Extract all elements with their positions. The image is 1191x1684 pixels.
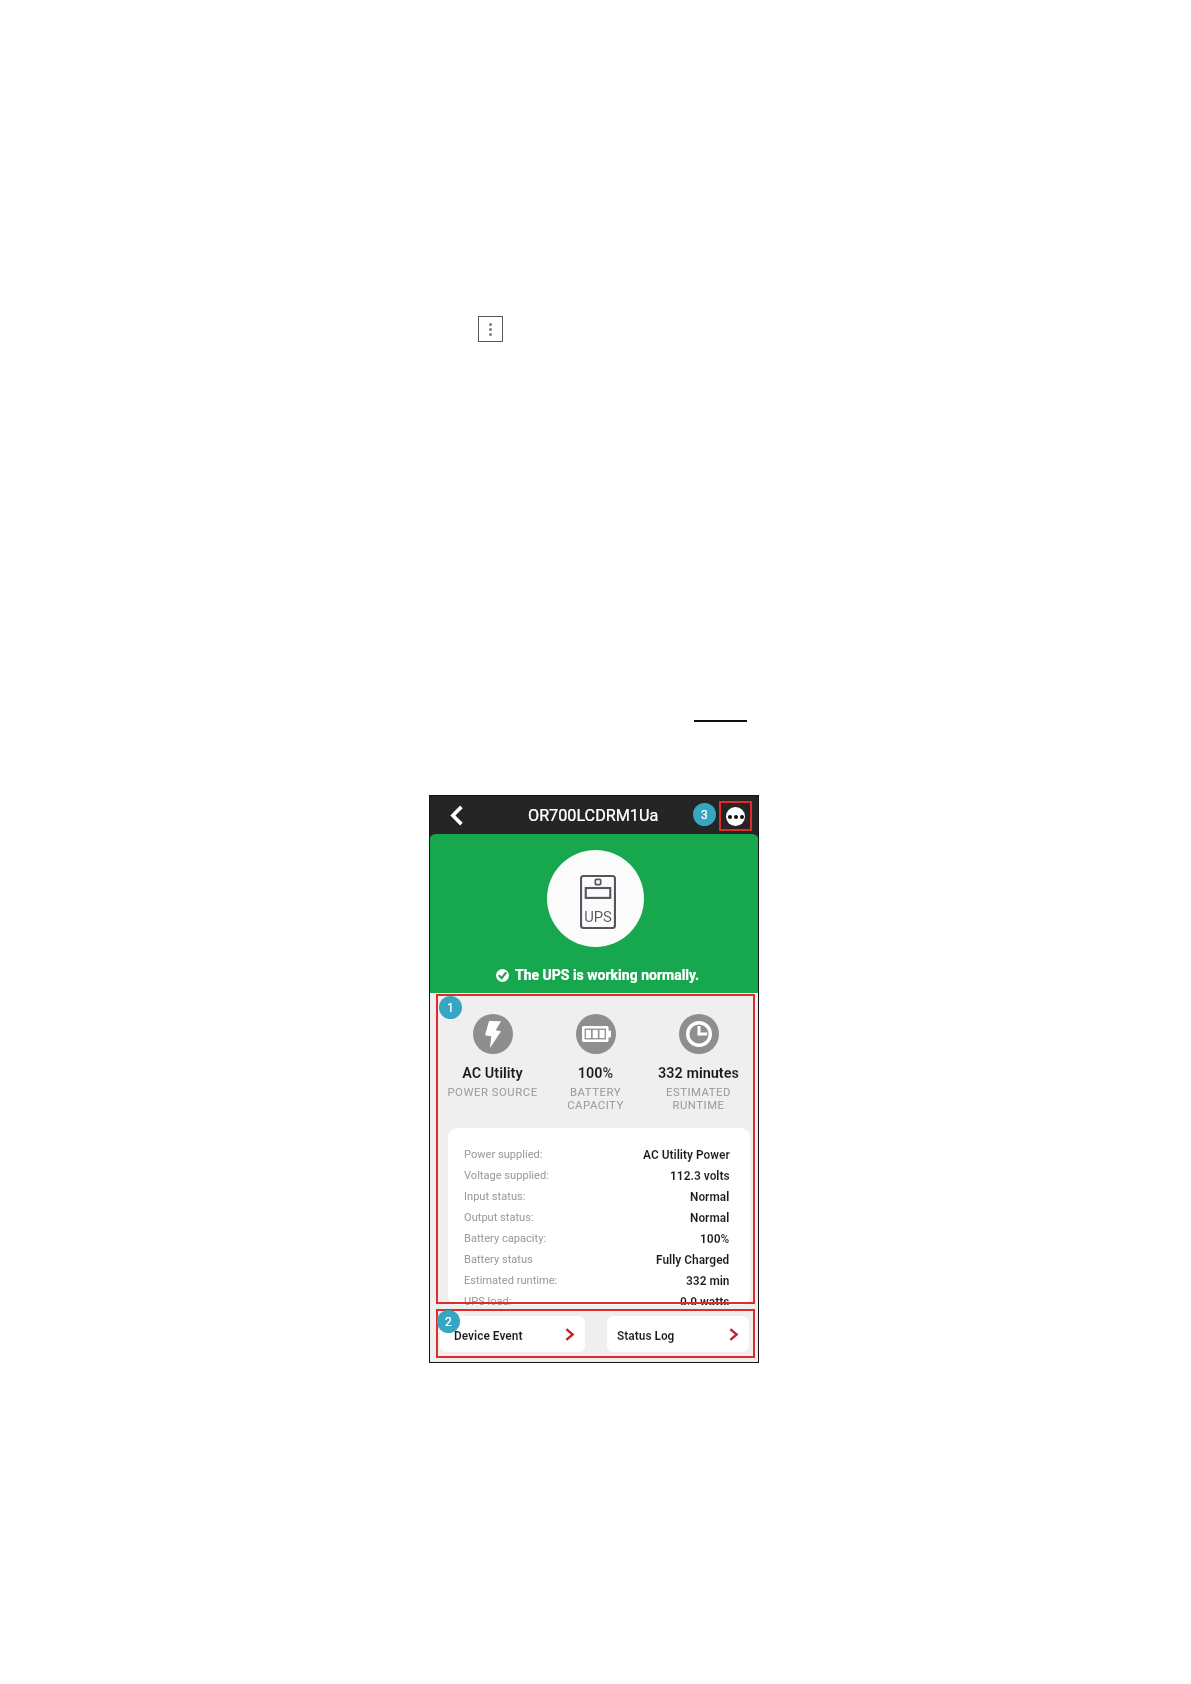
staticText: Estimated runtime: <box>464 1274 558 1287</box>
staticText: Voltage supplied: <box>464 1169 549 1182</box>
staticText: 100% <box>700 1232 730 1246</box>
button[interactable]: Device Event <box>440 1316 585 1352</box>
staticText: Power supplied: <box>464 1148 543 1161</box>
staticText: Battery capacity: <box>464 1232 547 1245</box>
staticText: AC Utility <box>441 1065 544 1082</box>
staticText: Fully Charged <box>656 1253 730 1267</box>
staticText: 1 <box>447 1001 454 1015</box>
staticText: ESTIMATED RUNTIME <box>647 1086 750 1112</box>
staticText: BATTERY CAPACITY <box>544 1086 647 1112</box>
button[interactable]: Overflow menu <box>478 316 503 342</box>
staticText: Output status: <box>464 1211 534 1224</box>
button[interactable]: Back <box>443 802 469 828</box>
staticText: UPS <box>580 908 616 925</box>
staticText: Status Log <box>617 1329 675 1343</box>
staticText: 100% <box>544 1065 647 1082</box>
staticText: 2 <box>445 1315 452 1329</box>
staticText: 3 <box>701 808 708 822</box>
button[interactable]: More options <box>719 801 752 831</box>
staticText: 0.0 watts <box>680 1295 730 1305</box>
staticText: Device Event <box>454 1329 523 1343</box>
staticText: 332 min <box>686 1274 730 1288</box>
staticText: Input status: <box>464 1190 526 1203</box>
staticText: 332 minutes <box>647 1065 750 1082</box>
staticText: AC Utility Power <box>643 1148 730 1162</box>
staticText: OR700LCDRM1Ua <box>528 806 659 825</box>
staticText: Normal <box>690 1190 730 1204</box>
staticText: The UPS is working normally. <box>515 967 700 983</box>
staticText: Normal <box>690 1211 730 1225</box>
staticText: UPS load: <box>464 1295 512 1305</box>
staticText: Battery status <box>464 1253 533 1266</box>
staticText: 112.3 volts <box>670 1169 730 1183</box>
staticText: POWER SOURCE <box>441 1086 544 1099</box>
button[interactable]: Status Log <box>607 1316 749 1352</box>
